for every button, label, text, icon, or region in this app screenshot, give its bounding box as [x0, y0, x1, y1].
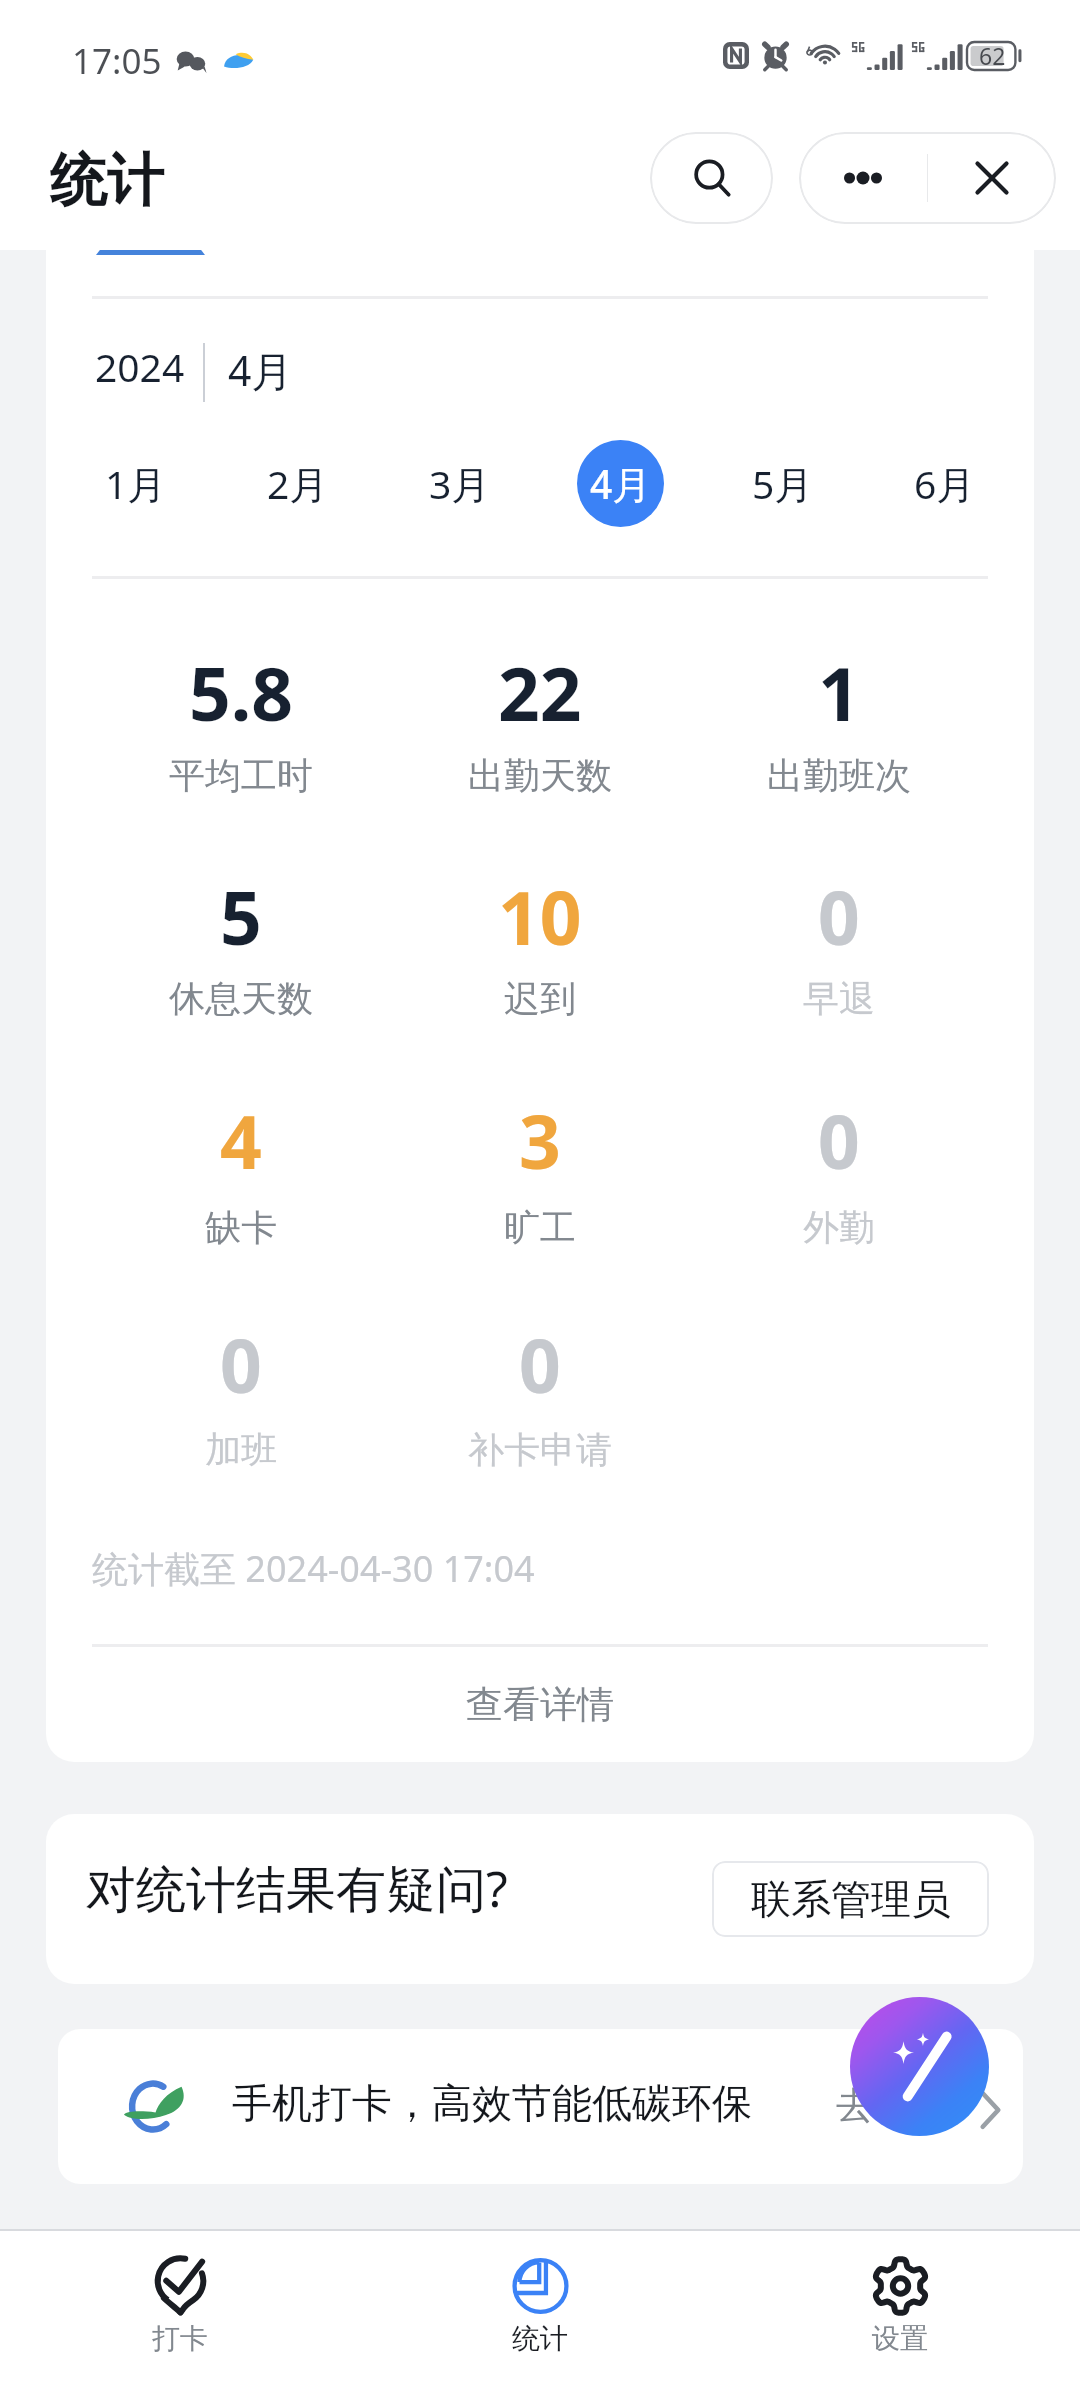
staticText: 0: [519, 1315, 561, 1414]
staticText: 迟到: [504, 976, 576, 1021]
staticText: 缺卡: [205, 1205, 277, 1250]
staticText: 休息天数: [169, 976, 313, 1021]
staticText: 打卡: [152, 2321, 208, 2356]
staticText: 统计: [50, 145, 164, 217]
staticText: 早退: [803, 976, 875, 1021]
staticText: 加班: [205, 1427, 277, 1472]
staticText: 3: [519, 1091, 561, 1190]
button[interactable]: 6月: [901, 440, 988, 527]
staticText: 0: [220, 1315, 262, 1414]
button[interactable]: More options: [799, 132, 927, 224]
staticText: 6月: [914, 457, 976, 510]
button[interactable]: 5月: [739, 440, 826, 527]
staticText: 0: [818, 867, 860, 966]
staticText: 出勤天数: [468, 753, 612, 798]
staticText: 22: [498, 643, 582, 742]
button[interactable]: 联系管理员: [712, 1861, 989, 1937]
staticText: 3月: [429, 457, 491, 510]
button[interactable]: Close: [928, 132, 1056, 224]
button[interactable]: 4月: [577, 440, 664, 527]
button[interactable]: 2月: [254, 440, 341, 527]
button[interactable]: 3月: [416, 440, 503, 527]
staticText: 去: [836, 2082, 873, 2129]
button[interactable]: 统计: [360, 2231, 720, 2382]
staticText: 联系管理员: [751, 1874, 951, 1924]
staticText: 外勤: [803, 1205, 875, 1250]
staticText: 补卡申请: [468, 1427, 612, 1472]
button[interactable]: 查看详情: [46, 1646, 1034, 1762]
staticText: 设置: [872, 2321, 928, 2356]
staticText: 出勤班次: [767, 753, 911, 798]
staticText: 62: [979, 40, 1006, 71]
staticText: 统计: [512, 2321, 568, 2356]
staticText: 4月: [228, 342, 293, 398]
staticText: 4: [220, 1091, 262, 1190]
staticText: 手机打卡，高效节能低碳环保: [232, 2078, 752, 2128]
button[interactable]: 手机打卡，高效节能低碳环保: [58, 2029, 1023, 2184]
button[interactable]: 设置: [720, 2231, 1080, 2382]
button[interactable]: 1月: [92, 440, 179, 527]
button[interactable]: 打卡: [0, 2231, 360, 2382]
staticText: 5: [220, 867, 262, 966]
staticText: 2月: [267, 457, 329, 510]
staticText: 1: [818, 643, 860, 742]
staticText: 旷工: [504, 1205, 576, 1250]
staticText: 统计截至 2024-04-30 17:04: [92, 1544, 535, 1593]
button[interactable]: AI assistant: [850, 1997, 989, 2136]
button[interactable]: Search: [650, 132, 773, 224]
staticText: 查看详情: [466, 1681, 614, 1728]
staticText: 10: [498, 867, 582, 966]
staticText: 2024: [95, 340, 185, 393]
staticText: 1月: [105, 457, 167, 510]
staticText: 17:05: [72, 37, 162, 85]
staticText: 平均工时: [169, 753, 313, 798]
staticText: 4月: [590, 457, 652, 510]
staticText: 5月: [752, 457, 814, 510]
staticText: 0: [818, 1091, 860, 1190]
staticText: 对统计结果有疑问?: [86, 1854, 508, 1922]
staticText: 5.8: [189, 643, 294, 742]
